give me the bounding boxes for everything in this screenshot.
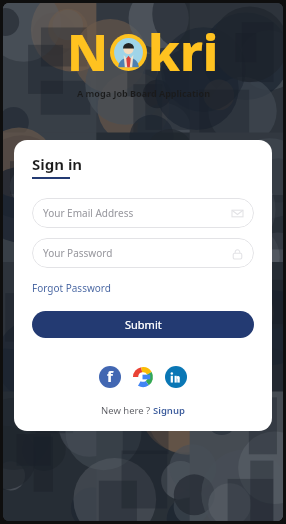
button[interactable]: New here ? <box>32 404 254 417</box>
staticText: Submit <box>125 317 162 332</box>
button[interactable]: Your Email Address <box>32 198 254 228</box>
button[interactable]: Submit <box>32 311 254 338</box>
button[interactable]: Sign in with LinkedIn <box>165 366 187 388</box>
staticText: f <box>107 366 113 386</box>
button[interactable]: Forgot Password <box>32 280 111 296</box>
staticText: Your Password <box>43 246 232 260</box>
button[interactable]: Your Password <box>32 238 254 268</box>
staticText: N <box>67 18 109 86</box>
staticText: Sign in <box>32 154 83 174</box>
button[interactable]: Sign in with Facebook <box>99 366 121 388</box>
staticText: Forgot Password <box>32 281 111 295</box>
staticText: A moga Job Board Application <box>77 87 210 99</box>
staticText: Your Email Address <box>43 206 232 220</box>
staticText: Signup <box>153 404 185 417</box>
staticText: kri <box>148 18 219 86</box>
staticText: New here ? <box>101 404 153 417</box>
button[interactable]: Sign in with Google <box>132 366 154 388</box>
